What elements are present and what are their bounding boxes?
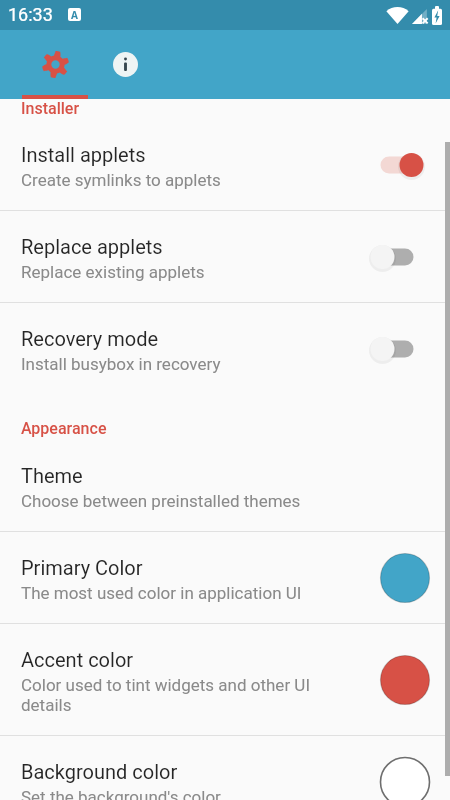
staticText: Replace existing applets bbox=[21, 262, 205, 282]
button[interactable]: Info tab bbox=[90, 30, 160, 99]
staticText: Set the background's color bbox=[21, 787, 221, 800]
button[interactable]: Theme bbox=[0, 440, 450, 531]
staticText: Install busybox in recovery bbox=[21, 354, 221, 374]
staticText: Replace applets bbox=[21, 235, 163, 258]
button[interactable]: Replace applets bbox=[0, 211, 450, 302]
staticText: 16:33 bbox=[8, 4, 53, 25]
staticText: Primary Color bbox=[21, 556, 143, 579]
button[interactable]: Accent color bbox=[0, 624, 450, 735]
staticText: Installer bbox=[21, 99, 80, 118]
staticText: Install applets bbox=[21, 143, 146, 166]
staticText: Color used to tint widgets and other UI … bbox=[21, 675, 336, 715]
staticText: A bbox=[71, 8, 78, 21]
button[interactable]: Background color bbox=[0, 736, 450, 800]
button[interactable]: Enabled bbox=[362, 147, 432, 183]
staticText: Background color bbox=[21, 760, 178, 783]
button[interactable]: Install applets bbox=[0, 119, 450, 210]
staticText: Theme bbox=[21, 464, 83, 487]
button[interactable]: Disabled bbox=[362, 331, 432, 367]
button[interactable]: Pick color bbox=[377, 754, 433, 800]
staticText: Create symlinks to applets bbox=[21, 170, 221, 190]
staticText: Appearance bbox=[21, 419, 107, 438]
staticText: Choose between preinstalled themes bbox=[21, 491, 301, 511]
button[interactable]: Installer settings tab bbox=[20, 30, 90, 99]
staticText: The most used color in application UI bbox=[21, 583, 302, 603]
button[interactable]: Recovery mode bbox=[0, 303, 450, 394]
staticText: Recovery mode bbox=[21, 327, 159, 350]
button[interactable]: Disabled bbox=[362, 239, 432, 275]
staticText: Accent color bbox=[21, 648, 134, 671]
button[interactable]: Primary Color bbox=[0, 532, 450, 623]
button[interactable]: Pick color bbox=[377, 550, 433, 606]
button[interactable]: Pick color bbox=[377, 652, 433, 708]
